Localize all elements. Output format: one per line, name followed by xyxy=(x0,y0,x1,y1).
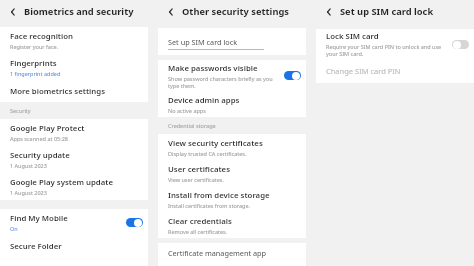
button[interactable]: Back xyxy=(6,5,20,19)
button[interactable]: Back xyxy=(164,5,178,19)
staticText: Apps scanned at 05:28 xyxy=(10,135,68,142)
staticText: More biometrics settings xyxy=(10,86,105,97)
button[interactable]: More biometrics settings xyxy=(0,81,148,102)
button[interactable]: Face recognition xyxy=(0,27,148,54)
staticText: Security update xyxy=(10,150,70,161)
staticText: Set up SIM card lock xyxy=(168,37,238,47)
button[interactable]: Switch on xyxy=(126,218,143,227)
staticText: 1 August 2023 xyxy=(10,162,47,169)
staticText: Register your face. xyxy=(10,43,59,50)
button[interactable]: Switch on xyxy=(284,71,301,80)
staticText: Certificate management app xyxy=(168,248,267,258)
staticText: Other security settings xyxy=(182,5,289,18)
button[interactable]: Switch off xyxy=(452,40,469,49)
staticText: User certificates xyxy=(168,164,231,175)
button[interactable]: Secure Folder xyxy=(0,236,148,256)
staticText: Install from device storage xyxy=(168,190,270,201)
staticText: Biometrics and security xyxy=(24,5,134,18)
button[interactable]: Make passwords visible xyxy=(158,60,306,91)
staticText: Show password characters briefly as you … xyxy=(168,75,282,89)
staticText: Find My Mobile xyxy=(10,213,68,224)
button[interactable]: View security certificates xyxy=(158,134,306,160)
staticText: Clear credentials xyxy=(168,216,232,227)
staticText: Secure Folder xyxy=(10,241,62,252)
button[interactable]: Device admin apps xyxy=(158,91,306,117)
staticText: Security xyxy=(10,107,31,114)
staticText: Face recognition xyxy=(10,31,73,42)
button[interactable]: Security update xyxy=(0,146,148,173)
staticText: Set up SIM card lock xyxy=(340,5,434,18)
staticText: Display trusted CA certificates. xyxy=(168,150,247,157)
staticText: Credential storage xyxy=(168,122,216,129)
button[interactable]: Certificate management app xyxy=(158,243,306,263)
staticText: Lock SIM card xyxy=(326,31,379,42)
button[interactable]: Fingerprints xyxy=(0,54,148,81)
button[interactable]: Back xyxy=(322,5,336,19)
staticText: Change SIM card PIN xyxy=(326,66,401,76)
button[interactable]: Install from device storage xyxy=(158,186,306,212)
staticText: Make passwords visible xyxy=(168,63,258,74)
staticText: Fingerprints xyxy=(10,58,57,69)
staticText: No active apps xyxy=(168,107,206,114)
button[interactable]: Lock SIM card xyxy=(316,29,474,59)
staticText: Require your SIM card PIN to unlock and … xyxy=(326,43,450,57)
staticText: 1 August 2023 xyxy=(10,189,47,196)
staticText: View user certificates. xyxy=(168,176,224,183)
staticText: Install certificates from storage. xyxy=(168,202,250,209)
button[interactable]: Clear credentials xyxy=(158,212,306,238)
staticText: Google Play system update xyxy=(10,177,114,188)
button[interactable]: Set up SIM card lock xyxy=(158,28,306,55)
staticText: View security certificates xyxy=(168,138,263,149)
staticText: Device admin apps xyxy=(168,95,240,106)
button[interactable]: Change SIM card PIN xyxy=(316,59,474,83)
staticText: 1 fingerprint added xyxy=(10,70,61,77)
button[interactable]: User certificates xyxy=(158,160,306,186)
staticText: On xyxy=(10,225,18,232)
button[interactable]: Find My Mobile xyxy=(0,209,148,236)
staticText: Remove all certificates. xyxy=(168,228,228,235)
button[interactable]: Google Play system update xyxy=(0,173,148,200)
button[interactable]: Google Play Protect xyxy=(0,119,148,146)
staticText: Google Play Protect xyxy=(10,123,85,134)
